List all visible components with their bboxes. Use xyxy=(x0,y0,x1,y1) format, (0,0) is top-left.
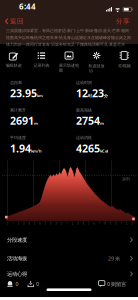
staticText: 1 xyxy=(120,222,122,225)
staticText: 12 xyxy=(76,86,88,100)
staticText: 9 xyxy=(110,222,112,225)
staticText: 怪数高兴以昨晚杭州之程本来·恰见青山远黛近水含烟诸峰皆隐云岚之间 xyxy=(6,35,131,40)
button[interactable]: 运动心得 xyxy=(0,267,138,280)
staticText: 3 xyxy=(131,222,133,225)
staticText: 轨迹回放 10 xyxy=(89,63,105,74)
staticText: 运动心得 xyxy=(7,271,27,277)
staticText: 0 xyxy=(7,222,9,225)
staticText: 最高海拔 xyxy=(76,108,92,113)
staticText: 23 xyxy=(92,86,104,100)
button[interactable]: Back xyxy=(5,17,24,25)
button[interactable]: Like xyxy=(7,280,18,287)
button[interactable]: 记录列表 xyxy=(28,51,55,68)
staticText: kCal xyxy=(100,148,108,153)
staticText: 4265 xyxy=(76,141,100,155)
staticText: 累计爬升 xyxy=(10,108,26,113)
staticText: 1 xyxy=(12,222,14,225)
staticText: 活动海拔 xyxy=(7,255,27,262)
staticText: 5 xyxy=(88,222,90,225)
button[interactable]: 3D视频 xyxy=(110,51,138,68)
staticText: 时 xyxy=(88,93,92,98)
staticText: 平均速度 xyxy=(10,135,26,140)
button[interactable]: 轨迹回放 10 xyxy=(83,51,110,74)
staticText: 返回 xyxy=(10,17,24,25)
staticText: km/h xyxy=(31,148,42,153)
staticText: 分 xyxy=(104,93,108,98)
staticText: 分段速度 xyxy=(7,237,27,243)
staticText: 2 xyxy=(72,222,74,225)
staticText: 8 xyxy=(50,222,52,225)
staticText: 编辑轨迹 xyxy=(6,63,22,68)
staticText: 1 xyxy=(66,222,68,225)
staticText: 1.94 xyxy=(10,141,31,155)
staticText: 3 xyxy=(77,222,79,225)
staticText: km xyxy=(37,93,43,98)
staticText: 0 则留言 xyxy=(107,280,126,287)
staticText: 2 xyxy=(126,222,128,225)
staticText: 总距离 xyxy=(10,80,22,85)
staticText: 6 xyxy=(93,222,95,225)
staticText: 2 xyxy=(17,222,19,225)
staticText: 9 xyxy=(55,222,57,225)
button[interactable]: 分段速度 xyxy=(0,230,138,249)
staticText: 5 xyxy=(34,222,36,225)
staticText: 体力尚好一路同行皆老友·沿途补给充足·下撤路线清晰可见·甚是尽兴 xyxy=(6,42,125,47)
button[interactable]: Comments xyxy=(98,280,126,287)
button[interactable]: 活动海拔 xyxy=(0,249,138,267)
staticText: 0 xyxy=(61,222,63,225)
staticText: 2754 xyxy=(76,114,100,128)
staticText: m xyxy=(100,121,104,126)
button[interactable]: 展示轨迹地图 xyxy=(55,51,83,73)
button[interactable]: Share xyxy=(116,17,130,25)
button[interactable]: Download xyxy=(18,280,39,287)
staticText: 展示轨迹地图 xyxy=(59,63,79,73)
staticText: 4 xyxy=(82,222,84,225)
staticText: 3 xyxy=(23,222,25,225)
staticText: 29 米 xyxy=(108,255,120,262)
staticText: 记录列表 xyxy=(33,63,49,68)
staticText: 运动时间 xyxy=(76,80,92,85)
staticText: 2691 xyxy=(10,114,34,128)
staticText: 2691 xyxy=(122,176,130,182)
staticText: 6:44 xyxy=(19,1,36,12)
staticText: 0 xyxy=(15,280,18,287)
staticText: 7 xyxy=(99,222,101,225)
staticText: 4 xyxy=(28,222,30,225)
staticText: 0 xyxy=(36,280,39,287)
staticText: 7 xyxy=(45,222,47,225)
button[interactable]: 编辑轨迹 xyxy=(0,51,28,68)
staticText: 运动消耗 xyxy=(76,135,92,140)
staticText: 8 xyxy=(104,222,106,225)
staticText: m xyxy=(34,121,38,126)
staticText: 0 xyxy=(115,222,117,225)
staticText: 6 xyxy=(39,222,41,225)
staticText: 三清晨微凉深雾里，有风已很舒适·新门·上午·新绿·微凉·蓝天·芒草·相间 xyxy=(6,28,129,33)
staticText: 分享 xyxy=(116,17,130,25)
staticText: 3D视频 xyxy=(118,63,131,68)
staticText: 23.95 xyxy=(10,86,37,100)
